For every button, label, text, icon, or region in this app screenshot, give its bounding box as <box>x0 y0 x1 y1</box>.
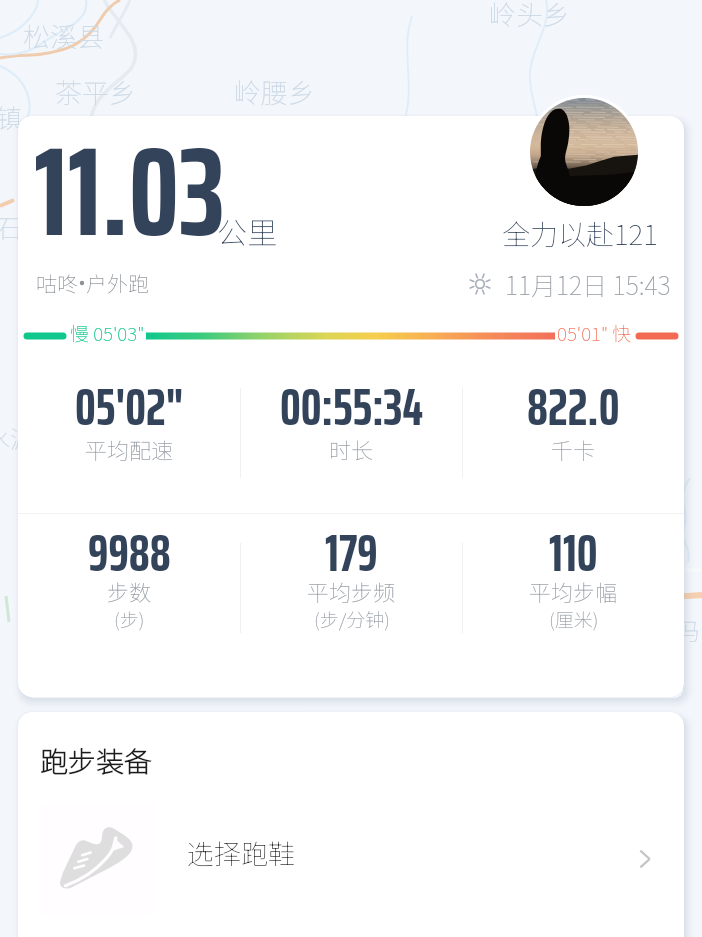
staticText: 822.0 <box>527 366 620 448</box>
staticText: 05'01" 快 <box>557 319 632 347</box>
staticText: 11.03 <box>34 116 225 290</box>
staticText: (步/分钟) <box>314 605 390 631</box>
staticText: 岭腰乡 <box>234 72 315 111</box>
staticText: 慢 05'03" <box>70 319 145 347</box>
staticText: 茶平乡 <box>55 72 136 111</box>
staticText: 平均步幅 <box>529 575 618 607</box>
staticText: 户外跑 <box>86 268 149 298</box>
staticText: 千卡 <box>551 433 596 461</box>
other: Select running shoes <box>632 846 658 872</box>
staticText: 平均步频 <box>307 575 396 607</box>
staticText: 石 <box>0 208 23 246</box>
staticText: (步) <box>114 605 145 631</box>
staticText: 岭头乡 <box>489 0 570 33</box>
button[interactable]: User avatar <box>530 98 638 206</box>
staticText: 咕咚 <box>36 268 78 298</box>
staticText: 选择跑鞋 <box>187 833 295 872</box>
staticText: 全力以赴121 <box>502 213 658 254</box>
staticText: 镇 <box>0 98 23 136</box>
staticText: 步数 <box>107 575 152 607</box>
staticText: 松溪县 <box>23 16 104 55</box>
staticText: 平均配速 <box>85 433 174 461</box>
staticText: 跑步装备 <box>40 740 153 781</box>
staticText: 11月12日 15:43 <box>505 266 671 302</box>
staticText: 110 <box>549 512 598 594</box>
staticText: 公里 <box>217 209 277 252</box>
staticText: 179 <box>325 512 378 594</box>
staticText: 05'02" <box>75 366 184 448</box>
staticText: 冯 <box>676 612 700 647</box>
staticText: 水源 <box>0 420 34 455</box>
staticText: 00:55:34 <box>280 366 423 448</box>
staticText: (厘米) <box>549 605 599 631</box>
button[interactable]: 选择跑鞋 <box>18 803 684 915</box>
staticText: 时长 <box>329 433 374 461</box>
staticText: 9988 <box>88 512 171 594</box>
